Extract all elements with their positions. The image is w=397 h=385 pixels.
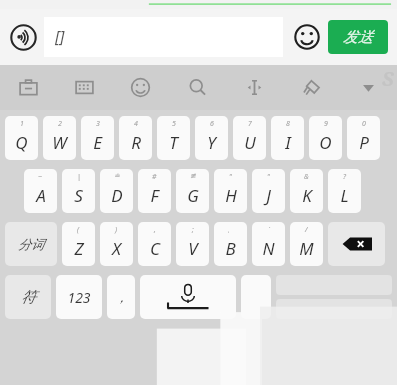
button[interactable]: Search bbox=[169, 65, 226, 110]
staticText: 5 bbox=[172, 119, 176, 129]
staticText: 8 bbox=[286, 119, 290, 129]
button[interactable]: ≐ bbox=[100, 169, 133, 213]
button[interactable]: ≢ bbox=[176, 169, 209, 213]
button[interactable]: Space / voice input bbox=[140, 275, 236, 319]
staticText: X bbox=[112, 237, 121, 260]
button[interactable]: ) bbox=[100, 222, 133, 266]
staticText: " bbox=[267, 172, 270, 182]
button[interactable]: Keyboard layout bbox=[56, 65, 112, 110]
staticText: F bbox=[150, 184, 159, 207]
button[interactable]: 3 bbox=[81, 116, 114, 160]
button[interactable]: 发送 bbox=[328, 20, 388, 54]
staticText: J bbox=[266, 184, 271, 207]
staticText: 0 bbox=[362, 119, 366, 129]
staticText: / bbox=[305, 225, 308, 235]
staticText: Q bbox=[15, 131, 28, 154]
button[interactable]: Theme bbox=[283, 65, 340, 110]
button[interactable]: 2 bbox=[43, 116, 76, 160]
staticText: B bbox=[225, 237, 236, 260]
staticText: ? bbox=[343, 172, 347, 182]
button[interactable]: ` bbox=[252, 222, 285, 266]
button[interactable]: 4 bbox=[119, 116, 152, 160]
staticText: D bbox=[111, 184, 123, 207]
button[interactable]: " bbox=[214, 169, 247, 213]
button[interactable]: Emoji bbox=[291, 21, 323, 53]
staticText: O bbox=[319, 131, 332, 154]
button[interactable] bbox=[276, 299, 392, 319]
button[interactable]: Toolbox bbox=[0, 65, 56, 110]
button[interactable]: 0 bbox=[347, 116, 380, 160]
staticText: ) bbox=[115, 225, 118, 235]
staticText: N bbox=[262, 237, 275, 260]
button[interactable]: ? bbox=[328, 169, 361, 213]
staticText: U bbox=[244, 131, 256, 154]
button[interactable]: 9 bbox=[309, 116, 342, 160]
staticText: 3 bbox=[96, 119, 100, 129]
button[interactable]: " bbox=[252, 169, 285, 213]
staticText: ~ bbox=[38, 172, 43, 182]
staticText: P bbox=[359, 131, 369, 154]
staticText: 发送 bbox=[343, 28, 373, 47]
staticText: 符 bbox=[21, 288, 36, 307]
button[interactable]: ( bbox=[62, 222, 95, 266]
button[interactable]: , bbox=[138, 222, 171, 266]
button[interactable]: [] bbox=[44, 17, 283, 57]
button[interactable]: 6 bbox=[195, 116, 228, 160]
button[interactable]: ; bbox=[176, 222, 209, 266]
staticText: S bbox=[382, 65, 394, 92]
button[interactable]: 123 bbox=[56, 275, 102, 319]
staticText: W bbox=[52, 131, 67, 154]
button[interactable]: Emoji panel bbox=[112, 65, 169, 110]
staticText: ≐ bbox=[114, 172, 120, 180]
staticText: | bbox=[77, 172, 81, 182]
button[interactable]: / bbox=[290, 222, 323, 266]
staticText: H bbox=[225, 184, 237, 207]
staticText: Y bbox=[207, 131, 216, 154]
staticText: [] bbox=[55, 26, 65, 48]
button[interactable]: 、 bbox=[214, 222, 247, 266]
staticText: 6 bbox=[210, 119, 214, 129]
staticText: 4 bbox=[134, 119, 138, 129]
staticText: 9 bbox=[324, 119, 328, 129]
button[interactable]: More bbox=[340, 65, 397, 110]
staticText: ≢ bbox=[190, 172, 196, 180]
staticText: R bbox=[131, 131, 141, 154]
staticText: E bbox=[93, 131, 102, 154]
button[interactable]: 5 bbox=[157, 116, 190, 160]
button[interactable]: # bbox=[138, 169, 171, 213]
staticText: & bbox=[304, 172, 309, 182]
staticText: G bbox=[187, 184, 199, 207]
staticText: S bbox=[74, 184, 83, 207]
staticText: C bbox=[150, 237, 160, 260]
staticText: ( bbox=[77, 225, 80, 235]
button[interactable]: ， bbox=[107, 275, 135, 319]
button[interactable]: Move cursor bbox=[226, 65, 283, 110]
staticText: L bbox=[340, 184, 349, 207]
staticText: 2 bbox=[58, 119, 62, 129]
staticText: V bbox=[188, 237, 198, 260]
staticText: ; bbox=[192, 225, 194, 235]
button[interactable]: 符 bbox=[5, 275, 51, 319]
staticText: I bbox=[285, 131, 291, 154]
button[interactable]: 8 bbox=[271, 116, 304, 160]
button[interactable] bbox=[241, 275, 271, 319]
button[interactable]: 分词 bbox=[5, 222, 57, 266]
button[interactable]: & bbox=[290, 169, 323, 213]
staticText: # bbox=[152, 172, 157, 182]
staticText: ， bbox=[115, 289, 128, 305]
staticText: 1 bbox=[20, 119, 24, 129]
button[interactable]: 1 bbox=[5, 116, 38, 160]
staticText: 、 bbox=[227, 225, 234, 234]
staticText: K bbox=[302, 184, 312, 207]
staticText: 123 bbox=[67, 288, 91, 307]
staticText: A bbox=[36, 184, 46, 207]
staticText: T bbox=[169, 131, 178, 154]
staticText: 分词 bbox=[18, 236, 44, 252]
staticText: " bbox=[229, 172, 232, 182]
button[interactable]: 7 bbox=[233, 116, 266, 160]
button[interactable]: ~ bbox=[24, 169, 57, 213]
button[interactable]: Voice input bbox=[7, 21, 39, 53]
button[interactable]: | bbox=[62, 169, 95, 213]
button[interactable]: Backspace bbox=[328, 222, 385, 266]
